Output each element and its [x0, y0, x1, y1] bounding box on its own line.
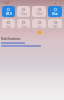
staticText: Rot: [6, 25, 11, 28]
button[interactable]: Data: [17, 6, 30, 17]
staticText: Loc: [37, 25, 42, 28]
button[interactable]: Edit tiles: [38, 31, 41, 34]
button[interactable]: Flash: [32, 6, 46, 17]
staticText: Cast: [21, 25, 27, 28]
staticText: Wi-Fi: [6, 12, 12, 16]
button[interactable]: NFC: [48, 19, 62, 28]
button[interactable]: Blue: [48, 6, 62, 17]
staticText: Data: [21, 12, 27, 16]
button[interactable]: Cast: [17, 19, 30, 28]
staticText: 9:41: [4, 1, 10, 5]
staticText: NFC: [53, 25, 58, 28]
staticText: Blue: [52, 12, 58, 16]
staticText: Flash: [36, 12, 43, 16]
button[interactable]: Rot: [2, 19, 15, 28]
button[interactable]: Wi-Fi: [2, 6, 15, 17]
staticText: Notifications: [1, 37, 21, 41]
button[interactable]: Loc: [32, 19, 46, 28]
